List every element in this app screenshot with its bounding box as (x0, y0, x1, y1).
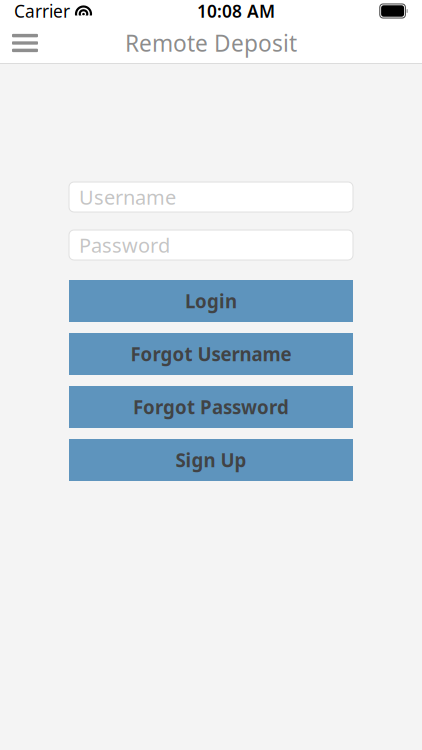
button[interactable]: Menu (3, 22, 47, 64)
staticText: Forgot Password (133, 395, 289, 419)
staticText: Remote Deposit (125, 28, 297, 58)
staticText: Forgot Username (130, 342, 291, 366)
staticText: 10:08 AM (197, 0, 275, 22)
staticText: Carrier (14, 0, 70, 22)
staticText: Sign Up (175, 448, 246, 472)
button[interactable]: Login (69, 280, 353, 322)
button[interactable]: Forgot Password (69, 386, 353, 428)
staticText: Login (185, 289, 237, 313)
staticText: Password (79, 232, 170, 258)
button[interactable]: Forgot Username (69, 333, 353, 375)
staticText: Username (79, 184, 176, 210)
button[interactable]: Sign Up (69, 439, 353, 481)
